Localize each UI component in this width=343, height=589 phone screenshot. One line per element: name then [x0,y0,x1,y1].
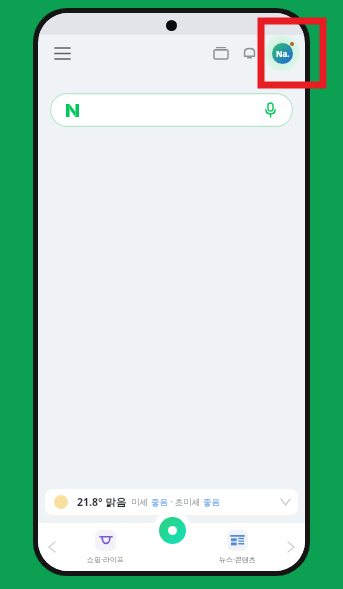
button[interactable]: Previous [43,538,61,556]
button[interactable]: Next [282,538,300,556]
staticText: 21.8° 맑음 [77,495,127,509]
button[interactable]: 쇼핑·라이프 [81,528,130,567]
staticText: 뉴스·콘텐츠 [219,555,256,565]
staticText: 쇼핑·라이프 [87,555,124,565]
button[interactable]: 21.8° 맑음 [45,489,298,515]
button[interactable]: Menu [48,39,76,67]
staticText: · 초미세 [168,496,203,508]
button[interactable]: Voice search [50,93,293,127]
staticText: 좋음 [151,497,168,508]
staticText: 미세 [131,496,151,508]
button[interactable]: Notifications [236,40,262,66]
button[interactable]: Home [153,511,191,549]
staticText: Na. [276,48,290,59]
button[interactable]: Naver Pay [208,40,234,66]
button[interactable]: Voice search [259,99,281,121]
staticText: 좋음 [203,497,220,508]
button[interactable]: Profile [263,35,301,71]
button[interactable]: 뉴스·콘텐츠 [213,528,262,567]
